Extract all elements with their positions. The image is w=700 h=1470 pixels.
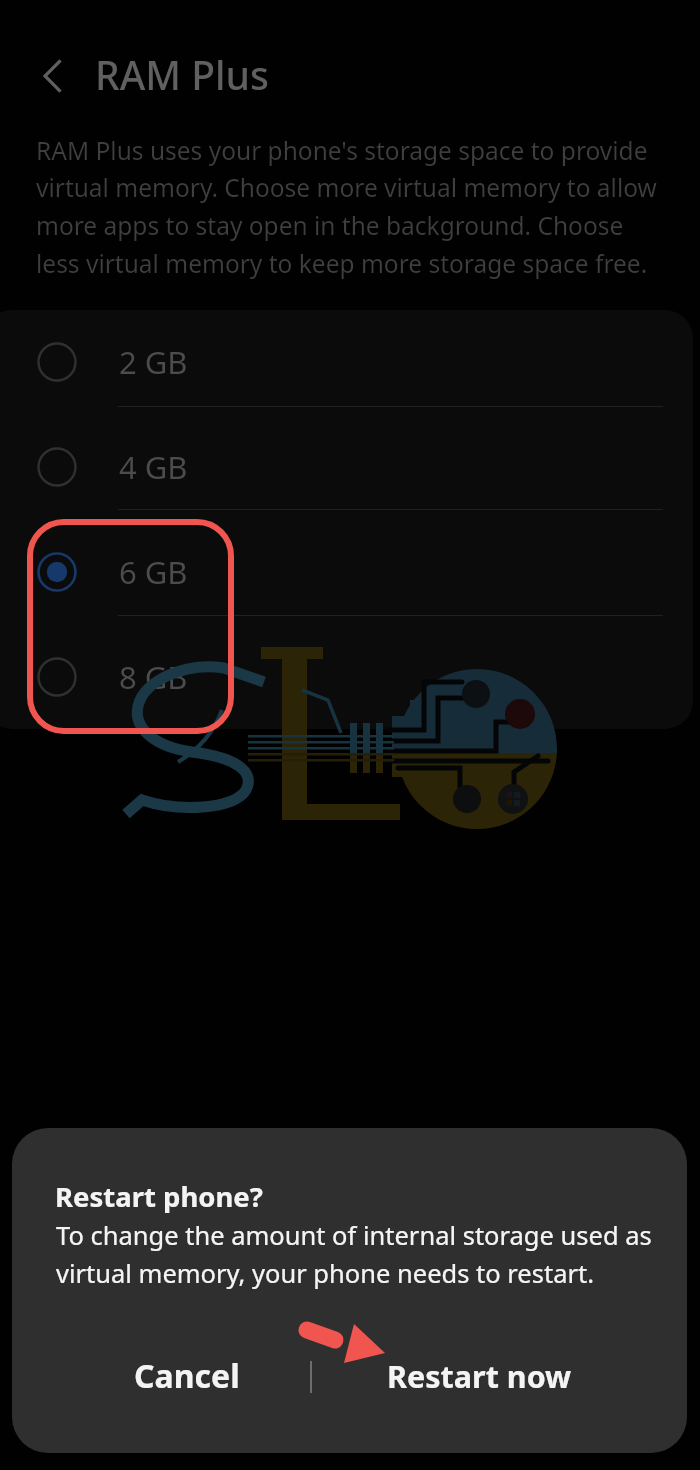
button[interactable]: Restart now [334, 1337, 624, 1415]
button[interactable]: Cancel [62, 1337, 312, 1415]
staticText: 8 GB [119, 656, 188, 698]
staticText: 2 GB [119, 341, 188, 383]
staticText: Cancel [134, 1354, 240, 1398]
button[interactable]: 2 GB [0, 310, 693, 414]
staticText: 4 GB [119, 446, 188, 488]
button[interactable]: 4 GB [0, 415, 693, 519]
staticText: To change the amount of internal storage… [56, 1218, 671, 1290]
staticText: RAM Plus [95, 48, 269, 101]
button[interactable]: 6 GB [0, 520, 693, 624]
button[interactable]: 8 GB [0, 625, 693, 729]
staticText: Restart now [387, 1355, 572, 1397]
staticText: RAM Plus uses your phone's storage space… [36, 134, 658, 281]
staticText: 6 GB [119, 551, 188, 593]
button[interactable]: Back [22, 45, 84, 107]
staticText: Restart phone? [55, 1178, 263, 1215]
